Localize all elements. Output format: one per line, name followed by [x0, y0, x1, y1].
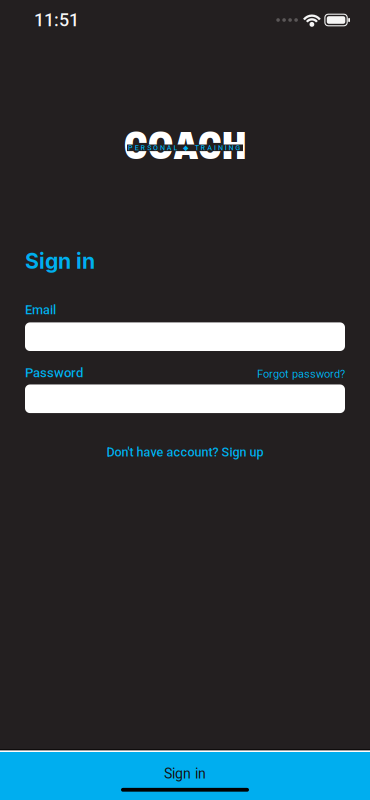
staticText: PERSONAL ◆ TRAINING [128, 144, 240, 152]
staticText: Password [25, 365, 83, 380]
staticText: Forgot password? [257, 367, 345, 380]
button[interactable]: Forgot password? [257, 367, 345, 380]
button[interactable]: Don't have account? Sign up [0, 443, 370, 461]
staticText: Email [25, 302, 56, 317]
staticText: 11:51 [34, 9, 79, 31]
button[interactable] [25, 384, 345, 413]
staticText: Don't have account? Sign up [106, 445, 263, 459]
button[interactable] [25, 322, 345, 351]
staticText: Sign in [164, 765, 206, 782]
button[interactable]: Sign in [0, 752, 370, 800]
staticText: COACH [123, 125, 246, 167]
staticText: Sign in [25, 248, 95, 274]
